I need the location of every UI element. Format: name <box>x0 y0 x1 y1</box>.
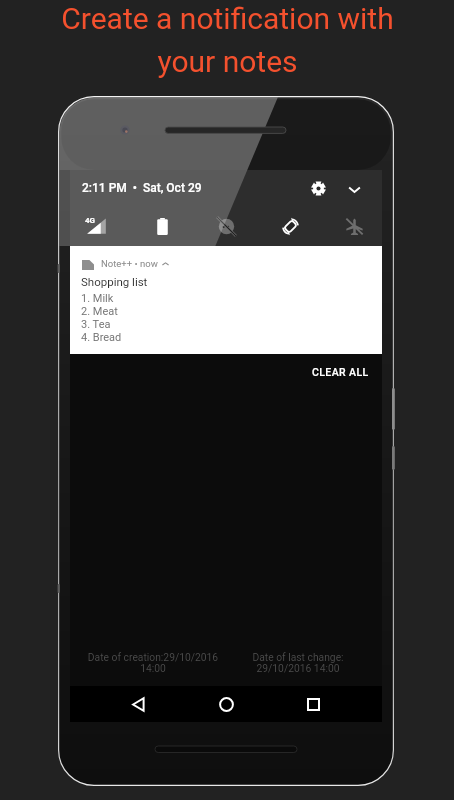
staticText: 1. Milk <box>81 292 114 305</box>
button[interactable]: Note++ • now <box>70 246 382 354</box>
staticText: Create a notification with your notes <box>61 1 394 79</box>
button[interactable]: Settings <box>303 173 333 203</box>
staticText: Date of last change: 29/10/2016 14:00 <box>218 651 378 675</box>
staticText: 4. Bread <box>81 331 122 344</box>
button[interactable]: Auto rotate <box>272 208 308 244</box>
staticText: 3. Tea <box>81 318 111 331</box>
button[interactable]: Battery <box>144 208 180 244</box>
button[interactable]: Collapse <box>339 174 369 204</box>
button[interactable]: Home <box>208 686 244 722</box>
button[interactable]: CLEAR ALL <box>298 358 383 386</box>
staticText: 4G <box>85 216 96 225</box>
button[interactable]: Do not disturb <box>208 208 244 244</box>
staticText: 2:11 PM • Sat, Oct 29 <box>82 181 202 195</box>
button[interactable]: Airplane mode <box>336 208 372 244</box>
staticText: 2. Meat <box>81 305 118 318</box>
staticText: Date of creation:29/10/2016 14:00 <box>73 651 233 675</box>
staticText: Shopping list <box>81 275 148 288</box>
button[interactable]: Recents <box>295 686 331 722</box>
button[interactable]: Back <box>120 686 156 722</box>
staticText: Note++ • now <box>101 258 158 269</box>
button[interactable]: Mobile data <box>77 210 113 246</box>
staticText: CLEAR ALL <box>312 366 369 378</box>
